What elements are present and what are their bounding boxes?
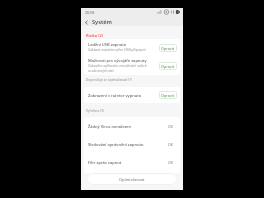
- staticText: Sledování oprávnění zapnuto: [88, 142, 168, 147]
- staticText: OK: [168, 160, 173, 165]
- staticText: Optimalizovat: [119, 177, 145, 182]
- staticText: Zakázat ostatním přes USB připojení: [88, 47, 146, 52]
- staticText: Možnosti pro vývojáře zapnuty: [88, 58, 147, 63]
- staticText: Filtr zpráv zapnut: [88, 160, 168, 165]
- button[interactable]: Sledování oprávnění zapnuto: [84, 135, 180, 153]
- button[interactable]: Žádný Virus nenalezen: [84, 117, 180, 135]
- button[interactable]: Opravit: [159, 44, 177, 52]
- staticText: OK: [168, 124, 173, 129]
- button[interactable]: Opravit: [159, 62, 177, 70]
- button[interactable]: Zobrazení v ruletce vypnuto: [84, 87, 180, 103]
- staticText: Systém: [92, 18, 112, 26]
- button[interactable]: Optimalizovat: [87, 173, 177, 185]
- staticText: Doporučuje se optimalizovat (1): [86, 78, 132, 82]
- staticText: Opravit: [161, 46, 175, 51]
- staticText: OK: [168, 142, 173, 147]
- staticText: Ladění USB zapnuto: [88, 42, 127, 47]
- staticText: Žádný Virus nenalezen: [88, 124, 168, 129]
- button[interactable]: Možnosti pro vývojáře zapnuty: [84, 56, 180, 75]
- button[interactable]: Opravit: [159, 91, 177, 99]
- button[interactable]: Ladění USB zapnuto: [84, 39, 180, 56]
- staticText: Zobrazení v ruletce vypnuto: [88, 93, 142, 98]
- staticText: Rizika (2): [86, 33, 103, 38]
- staticText: 20:58: [85, 10, 95, 15]
- button[interactable]: Back: [81, 17, 92, 27]
- staticText: Opravit: [161, 93, 175, 98]
- staticText: Zabraňte aplikacím zneužívání vašich sou…: [88, 63, 160, 73]
- button[interactable]: Filtr zpráv zapnut: [84, 153, 180, 171]
- staticText: Opravit: [161, 64, 175, 69]
- staticText: Vyřešeno (3): [86, 109, 104, 113]
